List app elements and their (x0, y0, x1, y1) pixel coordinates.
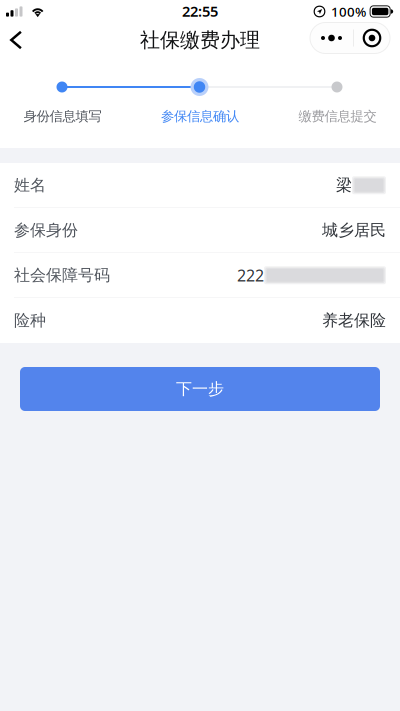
staticText: 养老保险 (322, 311, 386, 330)
staticText: 城乡居民 (322, 220, 386, 240)
button[interactable]: More options (310, 24, 400, 55)
staticText: 22:55 (182, 1, 218, 21)
staticText: 缴费信息提交 (298, 108, 376, 124)
staticText: 姓名 (14, 175, 46, 195)
staticText: 参保身份 (14, 220, 78, 240)
staticText: 社保缴费办理 (140, 28, 260, 52)
staticText: 险种 (14, 311, 46, 330)
staticText: 社会保障号码 (14, 265, 110, 285)
button[interactable]: Back (0, 23, 44, 57)
staticText: 222 (237, 265, 264, 286)
staticText: 100% (331, 3, 366, 20)
staticText: 身份信息填写 (23, 108, 101, 124)
button[interactable]: 下一步 (20, 367, 380, 411)
staticText: 参保信息确认 (161, 108, 239, 124)
staticText: 梁 (336, 175, 352, 195)
staticText: 下一步 (176, 379, 224, 399)
